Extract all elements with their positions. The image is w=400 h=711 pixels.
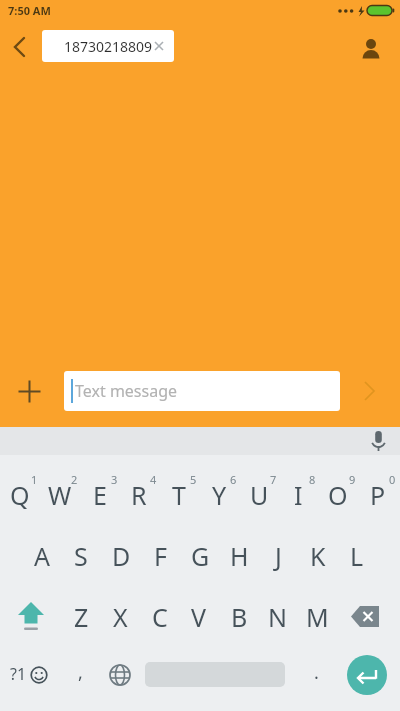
button[interactable]: V bbox=[179, 597, 219, 637]
button[interactable]: I bbox=[278, 475, 318, 515]
staticText: O bbox=[328, 478, 348, 512]
staticText: , bbox=[78, 660, 83, 685]
button[interactable]: C bbox=[140, 597, 180, 637]
button[interactable]: Z bbox=[61, 597, 101, 637]
staticText: S bbox=[74, 539, 88, 573]
button[interactable]: B bbox=[219, 597, 259, 637]
button[interactable]: Text message bbox=[64, 371, 340, 411]
staticText: 0 bbox=[389, 472, 396, 487]
button[interactable]: H bbox=[219, 536, 259, 576]
button[interactable]: 4 bbox=[133, 459, 173, 499]
button[interactable]: A bbox=[22, 536, 62, 576]
button[interactable] bbox=[104, 659, 136, 691]
button[interactable]: E bbox=[80, 475, 120, 515]
button[interactable]: Q bbox=[0, 475, 40, 515]
staticText: I bbox=[294, 478, 303, 512]
button[interactable]: , bbox=[60, 652, 100, 692]
staticText: F bbox=[154, 539, 167, 573]
staticText: U bbox=[250, 478, 269, 512]
button[interactable]: U bbox=[239, 475, 279, 515]
staticText: 7:50 AM bbox=[8, 3, 51, 18]
button[interactable] bbox=[347, 655, 387, 695]
staticText: 5 bbox=[190, 472, 197, 487]
staticText: 9 bbox=[349, 472, 356, 487]
staticText: 18730218809 bbox=[64, 37, 153, 56]
button[interactable]: P bbox=[358, 475, 398, 515]
button[interactable]: M bbox=[297, 597, 337, 637]
button[interactable]: N bbox=[258, 597, 298, 637]
staticText: . bbox=[314, 660, 319, 685]
staticText: 7 bbox=[270, 472, 277, 487]
button[interactable]: 8 bbox=[292, 459, 332, 499]
button[interactable]: S bbox=[61, 536, 101, 576]
button[interactable]: W bbox=[40, 475, 80, 515]
button[interactable]: 6 bbox=[213, 459, 253, 499]
staticText: T bbox=[172, 478, 186, 512]
staticText: Y bbox=[212, 478, 227, 512]
button[interactable]: L bbox=[337, 536, 377, 576]
staticText: E bbox=[93, 478, 107, 512]
staticText: Q bbox=[10, 478, 30, 512]
button[interactable]: 2 bbox=[54, 459, 94, 499]
button[interactable] bbox=[357, 33, 385, 61]
button[interactable]: X bbox=[100, 597, 140, 637]
button[interactable] bbox=[6, 33, 34, 61]
button[interactable] bbox=[366, 428, 391, 455]
staticText: G bbox=[191, 539, 210, 573]
button[interactable]: K bbox=[298, 536, 338, 576]
staticText: W bbox=[48, 478, 72, 512]
staticText: P bbox=[370, 478, 386, 512]
button[interactable]: Y bbox=[199, 475, 239, 515]
staticText: N bbox=[268, 600, 288, 634]
staticText: 6 bbox=[230, 472, 237, 487]
staticText: Z bbox=[74, 600, 89, 634]
staticText: 4 bbox=[150, 472, 157, 487]
staticText: X bbox=[113, 600, 128, 634]
button[interactable]: F bbox=[140, 536, 180, 576]
button[interactable]: R bbox=[119, 475, 159, 515]
button[interactable]: 1 bbox=[14, 459, 54, 499]
button[interactable] bbox=[348, 598, 390, 636]
button[interactable]: O bbox=[318, 475, 358, 515]
staticText: B bbox=[231, 600, 248, 634]
button[interactable] bbox=[16, 378, 43, 405]
staticText: H bbox=[230, 539, 249, 573]
staticText: J bbox=[275, 539, 282, 573]
staticText: 8 bbox=[309, 472, 316, 487]
staticText: Text message bbox=[75, 380, 178, 402]
staticText: ?1 bbox=[10, 663, 27, 685]
button[interactable] bbox=[356, 377, 384, 405]
button[interactable] bbox=[10, 598, 52, 636]
staticText: A bbox=[34, 539, 50, 573]
button[interactable]: 0 bbox=[372, 459, 400, 499]
button[interactable]: D bbox=[101, 536, 141, 576]
button[interactable]: ?1 bbox=[6, 658, 58, 694]
button[interactable]: 3 bbox=[94, 459, 134, 499]
button[interactable]: 18730218809 bbox=[42, 30, 174, 62]
staticText: K bbox=[310, 539, 326, 573]
staticText: M bbox=[306, 600, 329, 634]
staticText: D bbox=[112, 539, 131, 573]
button[interactable]: 5 bbox=[173, 459, 213, 499]
button[interactable]: . bbox=[296, 652, 336, 692]
staticText: 3 bbox=[111, 472, 118, 487]
button[interactable]: J bbox=[258, 536, 298, 576]
button[interactable]: 9 bbox=[332, 459, 372, 499]
staticText: 1 bbox=[31, 472, 38, 487]
button[interactable]: G bbox=[180, 536, 220, 576]
staticText: V bbox=[191, 600, 207, 634]
button[interactable]: T bbox=[159, 475, 199, 515]
button[interactable]: 7 bbox=[253, 459, 293, 499]
staticText: R bbox=[131, 478, 147, 512]
staticText: C bbox=[152, 600, 168, 634]
staticText: 2 bbox=[71, 472, 78, 487]
staticText: L bbox=[350, 539, 364, 573]
